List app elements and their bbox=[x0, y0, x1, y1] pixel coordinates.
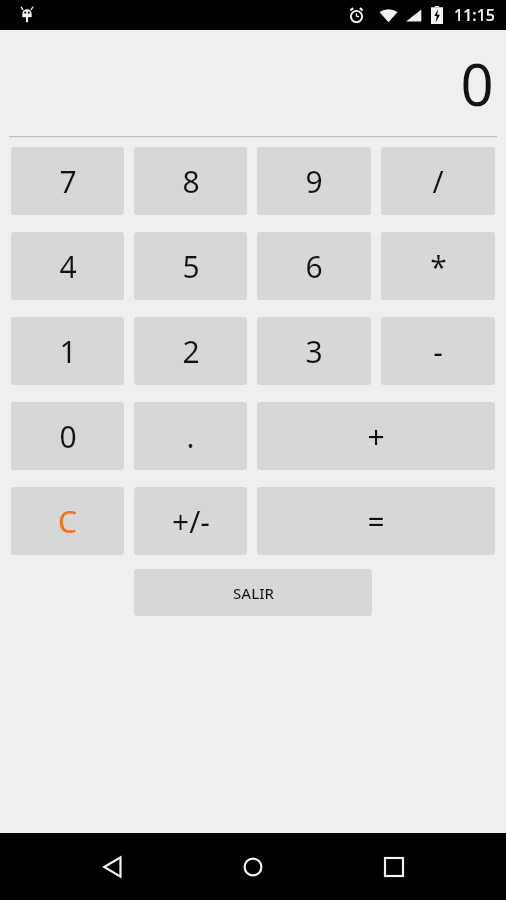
button[interactable]: * bbox=[381, 232, 495, 300]
button[interactable]: . bbox=[134, 402, 247, 470]
button[interactable]: 0 bbox=[11, 402, 124, 470]
staticText: 0 bbox=[460, 44, 494, 123]
staticText: SALIR bbox=[233, 583, 274, 603]
button[interactable]: + bbox=[257, 402, 495, 470]
staticText: 2 bbox=[182, 331, 200, 372]
button[interactable]: 2 bbox=[134, 317, 247, 385]
staticText: + bbox=[367, 416, 385, 457]
button[interactable]: 7 bbox=[11, 147, 124, 215]
staticText: * bbox=[430, 246, 447, 287]
staticText: 8 bbox=[182, 161, 200, 202]
staticText: 6 bbox=[305, 246, 323, 287]
button[interactable]: 9 bbox=[257, 147, 371, 215]
button[interactable]: / bbox=[381, 147, 495, 215]
button[interactable]: 8 bbox=[134, 147, 247, 215]
staticText: 3 bbox=[305, 331, 323, 372]
staticText: . bbox=[186, 416, 195, 457]
button[interactable]: = bbox=[257, 487, 495, 555]
staticText: +/- bbox=[172, 501, 210, 542]
staticText: = bbox=[367, 501, 385, 542]
button[interactable]: 1 bbox=[11, 317, 124, 385]
button[interactable]: SALIR bbox=[134, 569, 372, 616]
button[interactable]: 4 bbox=[11, 232, 124, 300]
button[interactable]: +/- bbox=[134, 487, 247, 555]
staticText: 7 bbox=[59, 161, 77, 202]
staticText: 1 bbox=[59, 331, 77, 372]
staticText: C bbox=[58, 501, 77, 542]
staticText: 11:15 bbox=[454, 4, 495, 26]
button[interactable]: Recent apps bbox=[366, 839, 422, 895]
button[interactable]: 3 bbox=[257, 317, 371, 385]
staticText: 5 bbox=[182, 246, 200, 287]
staticText: 0 bbox=[59, 416, 77, 457]
button[interactable]: C bbox=[11, 487, 124, 555]
button[interactable]: 6 bbox=[257, 232, 371, 300]
button[interactable]: 5 bbox=[134, 232, 247, 300]
staticText: / bbox=[432, 161, 444, 202]
staticText: 9 bbox=[305, 161, 323, 202]
button[interactable]: Back bbox=[85, 839, 141, 895]
staticText: 4 bbox=[59, 246, 77, 287]
button[interactable]: Home bbox=[225, 839, 281, 895]
button[interactable]: - bbox=[381, 317, 495, 385]
staticText: - bbox=[433, 331, 443, 372]
